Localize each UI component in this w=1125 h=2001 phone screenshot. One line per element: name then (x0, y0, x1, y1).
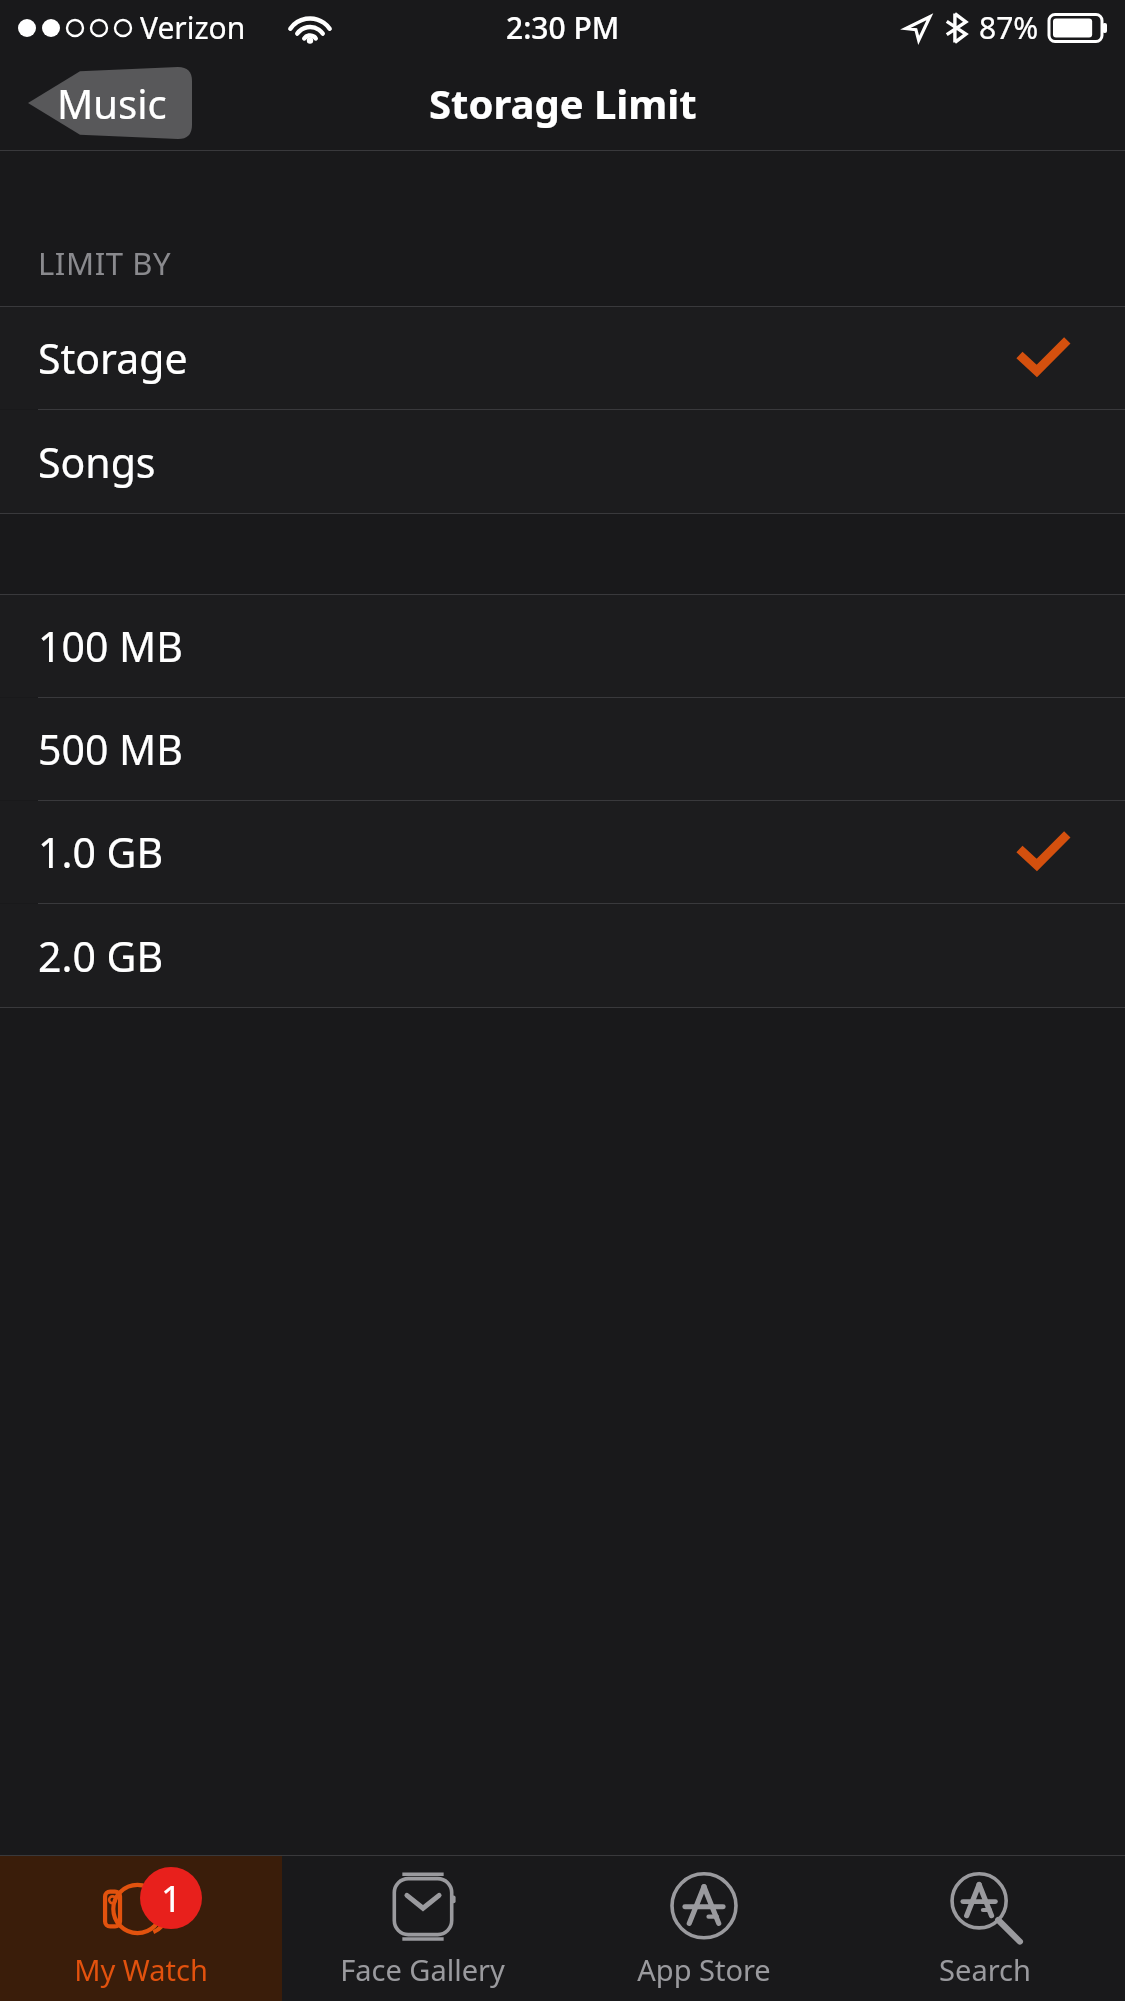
button[interactable]: 2.0 GB (0, 904, 1125, 1007)
staticText: Face Gallery (340, 1950, 505, 1989)
button[interactable]: Back to Music (0, 67, 192, 139)
button[interactable]: Storage (0, 307, 1125, 410)
button[interactable]: Face Gallery (282, 1856, 563, 2001)
staticText: 2.0 GB (38, 928, 164, 984)
staticText: Storage (38, 330, 188, 386)
staticText: 1.0 GB (38, 824, 164, 880)
staticText: 1 (161, 1874, 182, 1923)
staticText: Music (57, 76, 167, 130)
staticText: 100 MB (38, 618, 183, 674)
staticText: Search (939, 1950, 1031, 1989)
staticText: 87% (979, 7, 1039, 48)
staticText: Storage Limit (429, 76, 697, 130)
staticText: App Store (637, 1950, 771, 1989)
button[interactable]: 1.0 GB (0, 801, 1125, 904)
staticText: Songs (38, 434, 156, 490)
button[interactable]: 500 MB (0, 698, 1125, 801)
staticText: My Watch (74, 1950, 208, 1989)
button[interactable]: App Store (563, 1856, 844, 2001)
button[interactable]: 1 (0, 1856, 282, 2001)
staticText: 2:30 PM (506, 7, 620, 48)
button[interactable]: 100 MB (0, 595, 1125, 698)
button[interactable]: Songs (0, 410, 1125, 513)
staticText: Verizon (140, 7, 246, 48)
staticText: 500 MB (38, 721, 183, 777)
button[interactable]: Search (844, 1856, 1125, 2001)
staticText: LIMIT BY (38, 242, 172, 284)
